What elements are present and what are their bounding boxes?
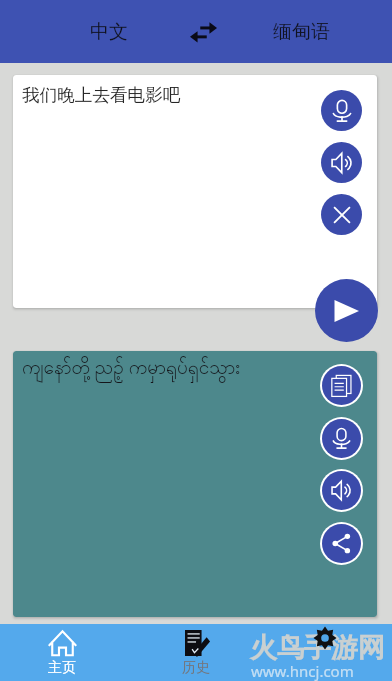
button[interactable]: Clear <box>321 194 362 235</box>
button[interactable]: Copy <box>322 366 361 405</box>
staticText: www.hncj.com <box>251 661 354 681</box>
button[interactable]: 主页 <box>16 624 108 681</box>
button[interactable]: 中文 <box>49 0 169 63</box>
button[interactable]: 历史 <box>150 624 242 681</box>
button[interactable]: Swap languages <box>179 13 228 51</box>
staticText: 火鸟手游网 <box>250 631 385 665</box>
button[interactable]: Translate <box>315 279 378 342</box>
staticText: 我们晚上去看电影吧 <box>22 84 181 106</box>
staticText: 中文 <box>90 20 128 44</box>
button[interactable]: 缅甸语 <box>241 0 361 63</box>
staticText: 主页 <box>48 659 76 677</box>
button[interactable]: Share <box>322 524 361 563</box>
button[interactable]: Microphone <box>322 419 361 458</box>
button[interactable]: Speak <box>321 142 362 183</box>
button[interactable]: Speak <box>322 471 361 510</box>
button[interactable]: Microphone <box>321 90 362 131</box>
staticText: 缅甸语 <box>273 20 330 44</box>
staticText: 历史 <box>182 659 210 677</box>
staticText: ကျနော်တို့ညဉ့် ကမှာရုပ်ရှင်သွား <box>22 354 241 384</box>
